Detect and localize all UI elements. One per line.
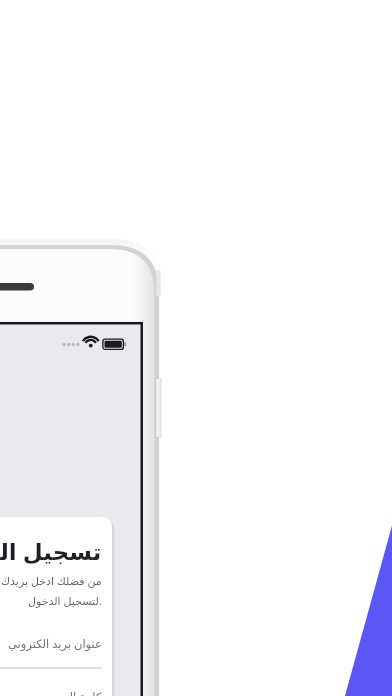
button[interactable]: Login screen phone mockup: [0, 0, 392, 696]
